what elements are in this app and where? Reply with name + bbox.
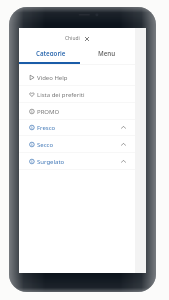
button[interactable]: Categorie — [23, 49, 79, 56]
staticText: Fresco — [37, 124, 56, 132]
staticText: PROMO — [37, 108, 60, 116]
staticText: Lista dei preferiti — [37, 91, 85, 99]
button[interactable]: PROMO — [19, 103, 135, 120]
staticText: Surgelato — [37, 158, 65, 166]
staticText: Secco — [37, 141, 54, 149]
button[interactable]: Menu — [79, 49, 135, 56]
other: Collapse — [121, 159, 126, 164]
other: Collapse — [121, 142, 126, 147]
button[interactable]: Chiudi — [65, 35, 90, 42]
staticText: Categorie — [36, 49, 66, 56]
other: Chiudi — [84, 36, 90, 42]
other: Collapse — [121, 125, 126, 130]
staticText: Video Help — [37, 74, 68, 82]
staticText: Chiudi — [65, 35, 80, 42]
button[interactable]: Secco — [19, 136, 135, 153]
button[interactable]: Surgelato — [19, 153, 135, 170]
button[interactable]: Video Help — [19, 69, 135, 86]
button[interactable]: Lista dei preferiti — [19, 86, 135, 103]
staticText: Menu — [98, 49, 116, 56]
button[interactable]: Fresco — [19, 119, 135, 136]
